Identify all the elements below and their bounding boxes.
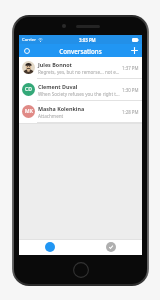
button[interactable]: Profile: [21, 45, 32, 56]
button[interactable]: MK: [19, 101, 142, 123]
staticText: Regrets, yes, but no remorse... not even…: [38, 69, 120, 75]
staticText: Conversations: [59, 47, 102, 55]
button[interactable]: Conversations: [19, 239, 80, 255]
staticText: Masha Kolenkina: [38, 105, 85, 112]
staticText: 1:30 PM: [122, 87, 139, 93]
staticText: 1:37 PM: [122, 65, 139, 71]
button[interactable]: CD: [19, 79, 142, 101]
staticText: 3:03 PM: [79, 37, 96, 43]
staticText: Clement Duval: [38, 83, 78, 90]
staticText: When Society refuses you the right to ex…: [38, 91, 120, 97]
staticText: Carrier: [22, 37, 36, 43]
button[interactable]: Completed: [80, 239, 142, 255]
button[interactable]: New conversation: [129, 45, 140, 56]
staticText: 1:28 PM: [122, 109, 139, 115]
staticText: Jules Bonnot: [38, 61, 72, 68]
button[interactable]: Jules Bonnot: [19, 57, 142, 79]
staticText: MK: [25, 108, 33, 115]
staticText: Attachment: [38, 113, 64, 119]
staticText: CD: [25, 86, 32, 93]
